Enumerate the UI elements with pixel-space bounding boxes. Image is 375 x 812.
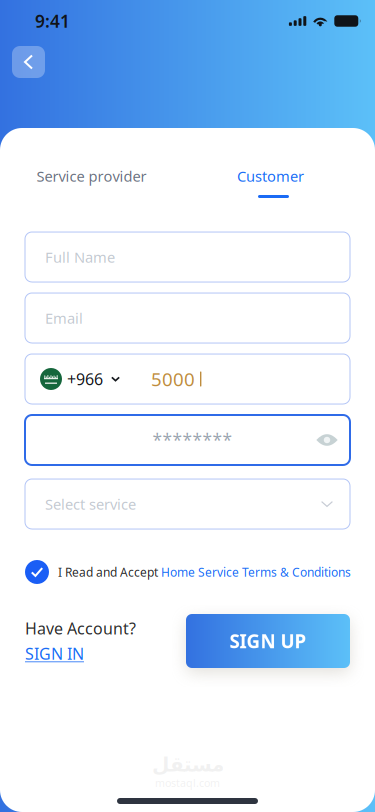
staticText: Select service	[45, 494, 136, 514]
button[interactable]: Customer	[183, 161, 358, 191]
button[interactable]: SIGN IN	[25, 643, 84, 664]
staticText: SIGN IN	[25, 643, 84, 664]
staticText: 9:41	[35, 9, 70, 32]
staticText: SIGN UP	[229, 629, 306, 653]
button[interactable]: I Read and Accept	[58, 560, 354, 584]
button[interactable]: Service provider	[0, 161, 183, 191]
button[interactable]: SIGN UP	[186, 614, 350, 668]
button[interactable]: Accept terms and conditions	[25, 560, 49, 584]
staticText: Full Name	[45, 247, 115, 267]
staticText: Service provider	[36, 166, 146, 186]
staticText: ********	[152, 428, 232, 451]
staticText: +966	[67, 368, 103, 390]
staticText: Customer	[237, 166, 304, 186]
staticText: mostaql.com	[155, 776, 220, 790]
staticText: مستقل	[151, 753, 223, 776]
staticText: I Read and Accept	[58, 564, 161, 580]
button[interactable]: Back	[12, 46, 45, 78]
staticText: Have Account?	[25, 618, 136, 639]
staticText: 5000	[151, 367, 195, 391]
staticText: Email	[45, 308, 83, 328]
staticText: Home Service Terms & Conditions	[161, 564, 351, 580]
